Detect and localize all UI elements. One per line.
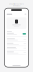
staticText: in one place [12,5,20,7]
staticText: Streamline your work [9,3,24,5]
